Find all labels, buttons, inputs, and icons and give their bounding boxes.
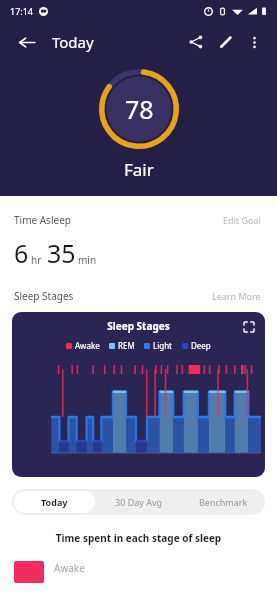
staticText: Time spent in each stage of sleep (0, 531, 277, 545)
button[interactable]: Benchmark (181, 489, 265, 515)
button[interactable]: More options (241, 29, 267, 55)
staticText: Today (41, 496, 68, 508)
staticText: Light (153, 340, 173, 351)
staticText: REM (118, 340, 135, 351)
staticText: 17:14 (10, 5, 34, 17)
staticText: Fair (124, 158, 154, 181)
staticText: Awake (54, 561, 85, 575)
button[interactable]: Awake (14, 561, 263, 583)
staticText: 6 (14, 236, 29, 270)
staticText: Deep (191, 340, 211, 351)
staticText: Edit Goal (223, 214, 261, 226)
staticText: Sleep Stages (12, 319, 265, 333)
button[interactable]: Expand chart (241, 319, 257, 335)
staticText: Awake (75, 340, 100, 351)
staticText: Sleep Stages (14, 289, 74, 303)
staticText: Benchmark (199, 496, 248, 508)
staticText: 35 (47, 236, 76, 270)
staticText: 78 (125, 92, 154, 126)
button[interactable]: Edit (211, 27, 241, 57)
button[interactable]: Learn More (210, 288, 263, 304)
button[interactable]: Share (181, 27, 211, 57)
button[interactable]: 30 Day Avg (97, 489, 181, 515)
button[interactable]: Back (10, 26, 42, 58)
staticText: hr (31, 253, 42, 267)
button[interactable]: Edit Goal (221, 212, 263, 228)
staticText: Time Asleep (14, 213, 71, 227)
button[interactable]: Today (14, 491, 95, 513)
button[interactable]: Sleep Stages (12, 312, 265, 477)
staticText: 30 Day Avg (115, 496, 163, 508)
staticText: Learn More (212, 290, 261, 302)
staticText: Today (52, 32, 94, 52)
staticText: min (78, 253, 97, 267)
